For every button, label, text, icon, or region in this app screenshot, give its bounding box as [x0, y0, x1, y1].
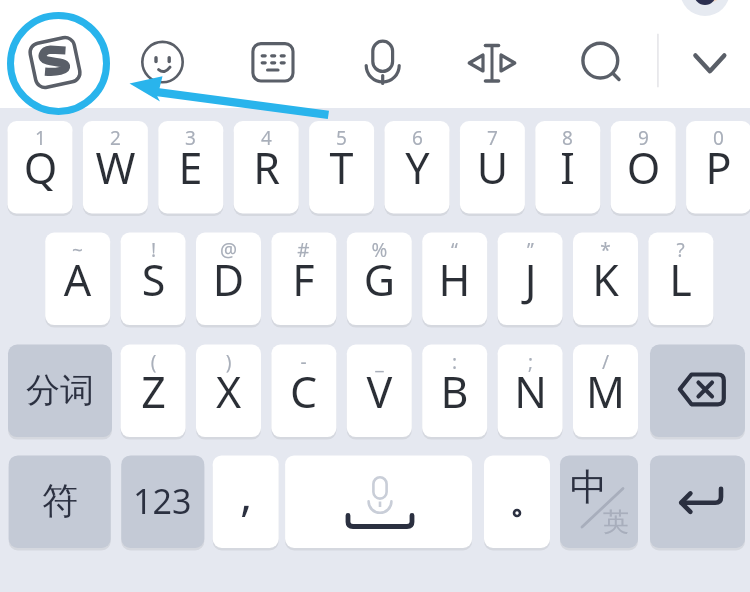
button[interactable]: ! [121, 233, 186, 326]
button[interactable]: ~ [45, 233, 110, 326]
button[interactable]: 3 [158, 121, 223, 214]
staticText: E [158, 138, 223, 197]
staticText: P [686, 138, 750, 197]
staticText: V [347, 362, 412, 421]
staticText: - [271, 349, 336, 375]
button[interactable]: 分词 [8, 345, 112, 438]
staticText: Q [8, 138, 73, 197]
staticText: A [45, 250, 110, 309]
button[interactable]: 中 [560, 455, 638, 548]
button[interactable]: ? [648, 233, 713, 326]
button[interactable]: # [271, 233, 336, 326]
staticText: O [611, 138, 676, 197]
staticText: % [347, 237, 412, 263]
staticText: # [271, 237, 336, 263]
staticText: M [573, 362, 638, 421]
staticText: S [121, 250, 186, 309]
button[interactable]: 9 [611, 121, 676, 214]
staticText: 123 [133, 478, 192, 524]
staticText: 中 [570, 464, 607, 511]
staticText: U [460, 138, 525, 197]
button[interactable]: % [347, 233, 412, 326]
button[interactable]: , [213, 455, 279, 548]
button[interactable]: Voice input [350, 30, 415, 95]
button[interactable]: Enter [650, 455, 745, 548]
staticText: F [271, 250, 336, 309]
button[interactable]: 5 [309, 121, 374, 214]
staticText: 2 [83, 125, 148, 151]
staticText: G [347, 250, 412, 309]
button[interactable]: * [573, 233, 638, 326]
staticText: 6 [385, 125, 450, 151]
staticText: ( [121, 349, 186, 375]
staticText: : [422, 349, 487, 375]
staticText: 4 [234, 125, 299, 151]
button[interactable]: Keyboard layout [240, 30, 305, 95]
button[interactable]: 123 [121, 455, 204, 548]
staticText: K [573, 250, 638, 309]
staticText: ! [121, 237, 186, 263]
staticText: ; [498, 349, 563, 375]
button[interactable]: Move cursor [459, 30, 524, 95]
staticText: / [573, 349, 638, 375]
button[interactable]: Space [285, 455, 472, 548]
staticText: W [83, 138, 148, 197]
button[interactable]: Backspace [650, 345, 745, 438]
button[interactable]: 6 [385, 121, 450, 214]
button[interactable]: 2 [83, 121, 148, 214]
button[interactable]: 7 [460, 121, 525, 214]
staticText: 5 [309, 125, 374, 151]
staticText: , [240, 462, 253, 525]
staticText: B [422, 362, 487, 421]
staticText: I [535, 138, 600, 197]
staticText: _ [347, 349, 412, 375]
staticText: 8 [535, 125, 600, 151]
button[interactable]: - [271, 345, 336, 438]
staticText: 7 [460, 125, 525, 151]
button[interactable]: Search [568, 30, 633, 95]
button[interactable]: / [573, 345, 638, 438]
staticText: X [196, 362, 261, 421]
staticText: N [498, 362, 563, 421]
staticText: 9 [611, 125, 676, 151]
staticText: D [196, 250, 261, 309]
staticText: Y [385, 138, 450, 197]
staticText: @ [196, 237, 261, 263]
button[interactable]: Full stop [484, 455, 550, 548]
button[interactable]: : [422, 345, 487, 438]
button[interactable]: 4 [234, 121, 299, 214]
staticText: ) [196, 349, 261, 375]
staticText: 符 [42, 478, 78, 523]
button[interactable]: 1 [8, 121, 73, 214]
staticText: C [271, 362, 336, 421]
staticText: 分词 [26, 369, 94, 412]
staticText: 英 [603, 506, 629, 539]
staticText: ? [648, 237, 713, 263]
button[interactable]: Hide keyboard [677, 30, 742, 95]
staticText: ~ [45, 237, 110, 263]
button[interactable]: 0 [686, 121, 750, 214]
button[interactable]: “ [422, 233, 487, 326]
staticText: 0 [686, 125, 750, 151]
button[interactable]: @ [196, 233, 261, 326]
staticText: ” [498, 237, 563, 263]
button[interactable]: _ [347, 345, 412, 438]
button[interactable]: ” [498, 233, 563, 326]
staticText: 1 [8, 125, 73, 151]
staticText: “ [422, 237, 487, 263]
staticText: Z [121, 362, 186, 421]
button[interactable]: 8 [535, 121, 600, 214]
button[interactable]: Sogou input method [7, 12, 110, 115]
button[interactable]: Emoji and stickers [131, 30, 196, 95]
button[interactable]: ; [498, 345, 563, 438]
staticText: R [234, 138, 299, 197]
staticText: L [648, 250, 713, 309]
button[interactable]: ) [196, 345, 261, 438]
staticText: H [422, 250, 487, 309]
staticText: 3 [158, 125, 223, 151]
staticText: * [573, 237, 638, 263]
button[interactable]: 符 [9, 455, 111, 548]
staticText: T [309, 138, 374, 197]
button[interactable]: ( [121, 345, 186, 438]
staticText: J [498, 250, 563, 309]
